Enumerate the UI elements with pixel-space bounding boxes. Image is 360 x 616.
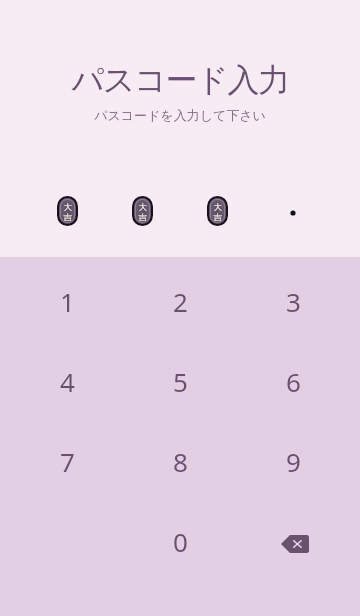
staticText: 8 — [173, 444, 188, 479]
staticText: パスコードを入力して下さい — [94, 107, 266, 123]
staticText: 2 — [173, 284, 188, 319]
staticText: 6 — [286, 364, 301, 399]
staticText: 大 吉 — [213, 202, 222, 222]
staticText: 3 — [286, 284, 301, 319]
button[interactable]: 1 — [10, 261, 124, 341]
button[interactable]: 8 — [124, 421, 237, 501]
button[interactable]: 6 — [237, 341, 350, 421]
button[interactable]: Backspace — [237, 501, 350, 581]
staticText: 大 吉 — [63, 202, 72, 222]
button[interactable]: 7 — [10, 421, 124, 501]
button[interactable]: 2 — [124, 261, 237, 341]
other: Backspace — [281, 535, 309, 553]
staticText: 9 — [286, 444, 301, 479]
staticText: 1 — [60, 284, 75, 319]
staticText: 5 — [173, 364, 188, 399]
button[interactable]: 0 — [124, 501, 237, 581]
staticText: 4 — [60, 364, 75, 399]
button[interactable]: 3 — [237, 261, 350, 341]
staticText: 大 吉 — [138, 202, 147, 222]
staticText: 7 — [60, 444, 75, 479]
staticText: 0 — [173, 524, 188, 559]
button[interactable]: 4 — [10, 341, 124, 421]
button[interactable]: 9 — [237, 421, 350, 501]
button[interactable]: 5 — [124, 341, 237, 421]
staticText: パスコード入力 — [71, 60, 289, 100]
